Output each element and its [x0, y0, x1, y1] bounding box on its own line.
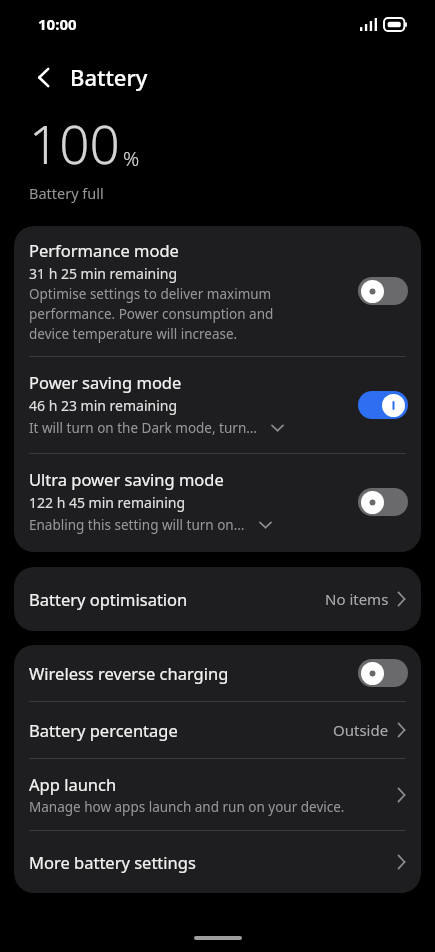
staticText: Power saving mode	[29, 371, 182, 393]
button[interactable]: Performance mode	[14, 226, 421, 356]
staticText: Ultra power saving mode	[29, 468, 224, 490]
button[interactable]: Battery percentage	[14, 702, 421, 758]
button[interactable]: Ultra power saving mode	[14, 454, 421, 552]
staticText: Battery optimisation	[29, 588, 325, 610]
button[interactable]: More battery settings	[14, 831, 421, 893]
button[interactable]: Power saving mode	[14, 357, 421, 453]
staticText: Enabling this setting will turn on…	[29, 516, 245, 534]
button[interactable]: Wireless reverse charging	[14, 645, 421, 701]
staticText: 100	[29, 107, 120, 179]
staticText: %	[123, 145, 140, 172]
button[interactable]: Off	[358, 659, 408, 687]
button[interactable]: Expand	[266, 417, 288, 439]
button[interactable]: Expand	[254, 514, 276, 536]
button[interactable]: App launch	[14, 759, 421, 830]
staticText: Outside	[333, 720, 389, 740]
staticText: No items	[325, 589, 389, 609]
staticText: Battery percentage	[29, 719, 333, 741]
button[interactable]: Battery optimisation	[14, 567, 421, 631]
staticText: Wireless reverse charging	[29, 662, 358, 684]
button[interactable]: On	[358, 391, 408, 419]
staticText: Performance mode	[29, 239, 179, 261]
staticText: Optimise settings to deliver maximum per…	[29, 285, 296, 343]
staticText: App launch	[29, 773, 117, 795]
staticText: 46 h 23 min remaining	[29, 396, 178, 415]
staticText: Battery full	[29, 183, 104, 203]
staticText: Manage how apps launch and run on your d…	[29, 798, 345, 816]
staticText: 10:00	[38, 14, 77, 34]
staticText: 122 h 45 min remaining	[29, 493, 186, 512]
staticText: Battery	[70, 62, 148, 92]
button[interactable]: Off	[358, 488, 408, 516]
button[interactable]: Off	[358, 277, 408, 305]
button[interactable]: Back	[27, 60, 61, 94]
staticText: It will turn on the Dark mode, turn…	[29, 419, 257, 437]
staticText: 31 h 25 min remaining	[29, 264, 178, 283]
staticText: More battery settings	[29, 851, 397, 873]
